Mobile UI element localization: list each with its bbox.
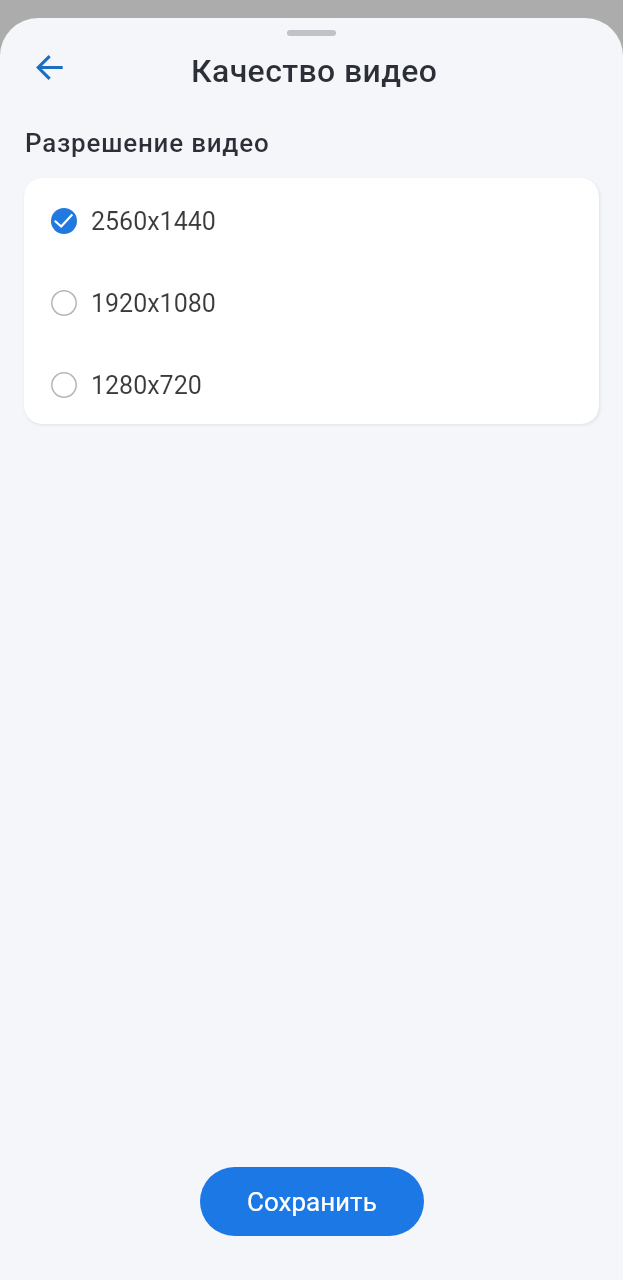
button[interactable]: 1920x1080	[24, 262, 599, 344]
staticText: 1920x1080	[91, 289, 216, 318]
staticText: 1280x720	[91, 371, 202, 400]
button[interactable]: 2560x1440	[24, 180, 599, 262]
staticText: Качество видео	[191, 52, 438, 90]
button[interactable]: Сохранить	[200, 1167, 424, 1236]
button[interactable]: 1280x720	[24, 344, 599, 424]
button[interactable]: Back	[25, 43, 73, 91]
staticText: Сохранить	[247, 1187, 377, 1217]
staticText: Разрешение видео	[25, 128, 270, 158]
staticText: 2560x1440	[91, 207, 216, 236]
